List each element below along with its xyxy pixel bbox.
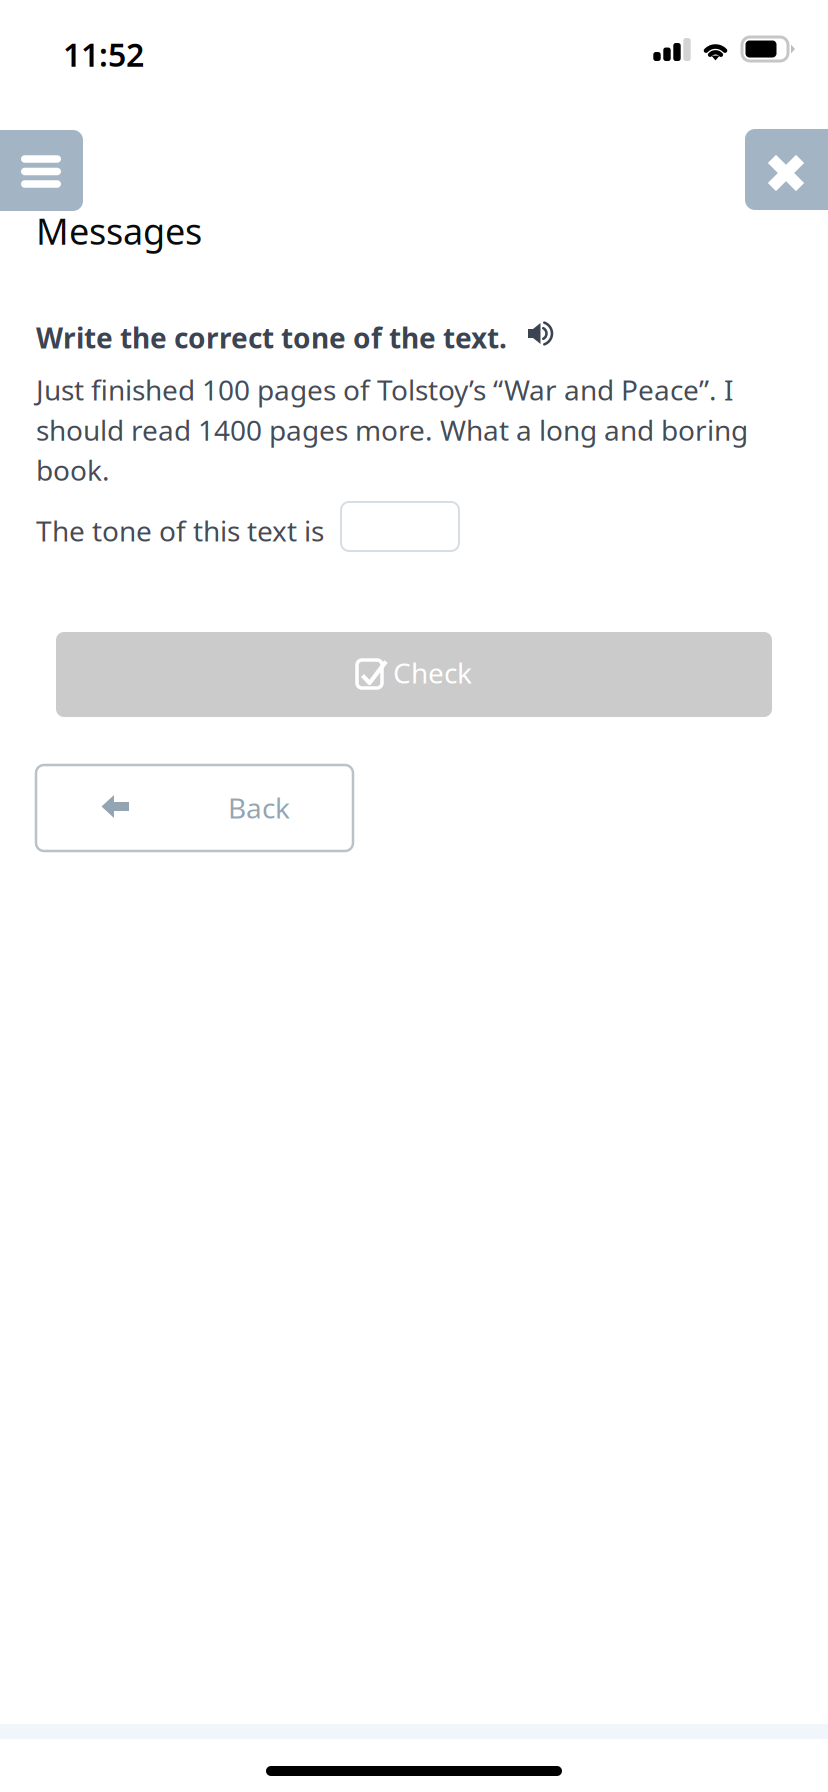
staticText: Messages xyxy=(36,207,202,255)
staticText: Back xyxy=(228,789,290,826)
staticText: The tone of this text is xyxy=(36,512,324,549)
button[interactable]: Check xyxy=(56,632,772,717)
staticText: Write the correct tone of the text. xyxy=(36,319,507,356)
button[interactable]: Close xyxy=(745,129,828,210)
button[interactable]: Menu xyxy=(0,130,83,211)
staticText: 11:52 xyxy=(63,33,144,75)
staticText: Check xyxy=(393,654,472,691)
staticText: Just finished 100 pages of Tolstoy’s “Wa… xyxy=(36,371,748,488)
button[interactable]: Back xyxy=(36,765,353,851)
button[interactable]: Play audio xyxy=(528,323,554,344)
